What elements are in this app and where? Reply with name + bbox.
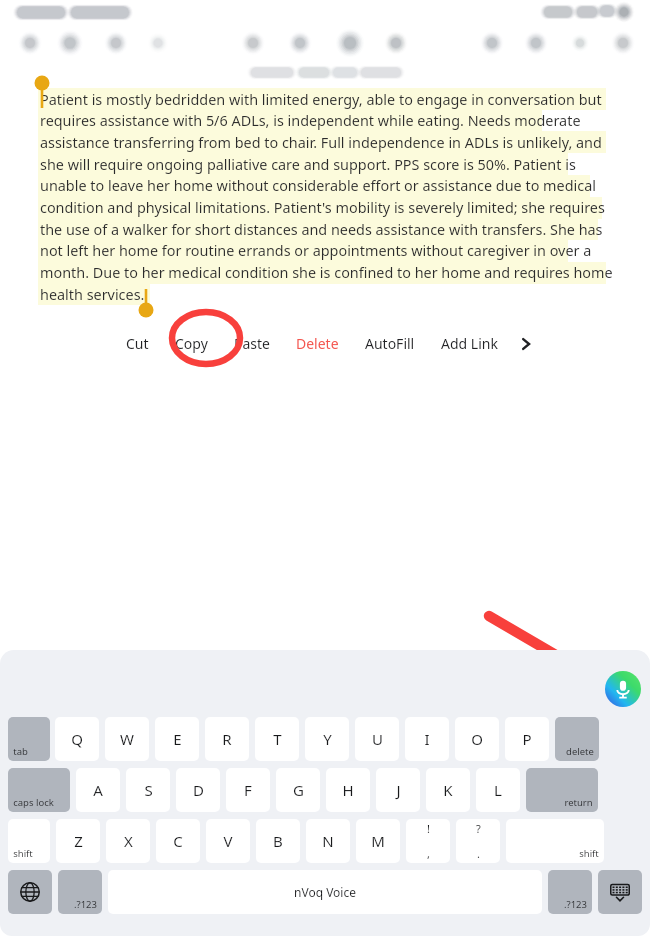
staticText: Q [71,729,83,749]
staticText: K [443,780,453,800]
staticText: nVoq Voice [294,884,356,900]
staticText: Copy [175,334,208,353]
staticText: G [293,780,304,800]
staticText: Delete [296,334,339,353]
button[interactable]: shift [8,819,50,863]
staticText: P [522,729,532,749]
staticText: return [564,796,593,809]
staticText: E [173,729,182,749]
button[interactable]: K [426,768,470,812]
button[interactable]: .?123 [548,870,592,914]
button[interactable]: F [226,768,270,812]
button[interactable]: Z [56,819,100,863]
button[interactable]: J [376,768,420,812]
button[interactable]: Delete [283,326,352,361]
staticText: D [193,780,204,800]
button[interactable]: return [526,768,598,812]
button[interactable]: Y [305,717,349,761]
button[interactable]: caps lock [8,768,70,812]
staticText: assistance transferring from bed to chai… [40,133,602,153]
staticText: ? [476,821,481,836]
staticText: S [144,780,153,800]
staticText: not left her home for routine errands or… [40,241,592,261]
button[interactable]: delete [555,717,599,761]
staticText: Patient is mostly bedridden with limited… [40,90,602,110]
staticText: shift [579,847,599,860]
button[interactable]: nVoq Voice dictation microphone [605,671,641,707]
staticText: .?123 [74,898,97,911]
button[interactable]: E [155,717,199,761]
button[interactable]: nVoq Voice [108,870,542,914]
staticText: she will require ongoing palliative care… [40,155,576,175]
button[interactable]: .?123 [58,870,102,914]
button[interactable]: Hide keyboard [598,870,642,914]
staticText: H [342,780,354,800]
button[interactable]: More options [511,329,541,359]
staticText: Z [74,831,83,851]
button[interactable]: S [126,768,170,812]
button[interactable]: D [176,768,220,812]
button[interactable]: Q [55,717,99,761]
staticText: R [222,729,232,749]
button[interactable]: W [105,717,149,761]
button[interactable]: L [476,768,520,812]
staticText: .?123 [564,898,587,911]
staticText: caps lock [13,796,54,809]
button[interactable]: ! [406,819,450,863]
button[interactable]: M [356,819,400,863]
staticText: C [173,831,183,851]
staticText: ! [427,821,430,836]
staticText: W [120,729,134,749]
button[interactable]: B [256,819,300,863]
staticText: Cut [126,334,149,353]
staticText: V [223,831,233,851]
button[interactable]: Paste [221,326,283,361]
staticText: Paste [234,334,270,353]
button[interactable]: U [355,717,399,761]
button[interactable]: C [156,819,200,863]
staticText: tab [13,745,28,758]
staticText: unable to leave her home without conside… [40,176,596,196]
button[interactable]: Cut [113,326,162,361]
staticText: F [244,780,252,800]
staticText: M [371,831,385,851]
staticText: A [93,780,103,800]
staticText: Add Link [441,334,498,353]
button[interactable]: Add Link [428,326,511,361]
staticText: T [273,729,282,749]
staticText: I [424,729,430,749]
button[interactable]: Copy [162,326,221,361]
staticText: Y [323,729,332,749]
staticText: U [372,729,383,749]
staticText: N [322,831,334,851]
button[interactable]: O [455,717,499,761]
button[interactable]: V [206,819,250,863]
button[interactable]: H [326,768,370,812]
staticText: month. Due to her medical condition she … [40,263,613,283]
button[interactable]: T [255,717,299,761]
button[interactable]: shift [506,819,604,863]
button[interactable]: X [106,819,150,863]
staticText: the use of a walker for short distances … [40,220,603,240]
button[interactable]: tab [8,717,50,761]
staticText: O [471,729,483,749]
staticText: health services. [40,285,145,305]
staticText: , [427,846,430,861]
button[interactable]: G [276,768,320,812]
button[interactable]: R [205,717,249,761]
button[interactable]: Switch language [8,870,52,914]
button[interactable]: A [76,768,120,812]
button[interactable]: N [306,819,350,863]
staticText: X [124,831,133,851]
staticText: requires assistance with 5/6 ADLs, is in… [40,111,581,131]
button[interactable]: AutoFill [352,326,428,361]
staticText: delete [566,745,594,758]
button[interactable]: ? [456,819,500,863]
button[interactable]: P [505,717,549,761]
staticText: J [396,780,401,800]
button[interactable]: I [405,717,449,761]
staticText: shift [13,847,33,860]
staticText: AutoFill [365,334,415,353]
staticText: condition and physical limitations. Pati… [40,198,605,218]
staticText: . [477,846,480,861]
